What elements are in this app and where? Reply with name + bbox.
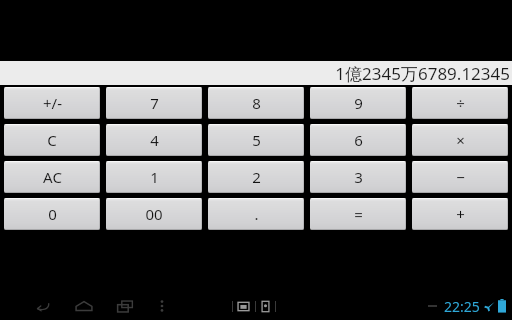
staticText: .: [254, 204, 259, 224]
button[interactable]: Recent apps: [112, 293, 138, 319]
staticText: 3: [354, 167, 363, 187]
staticText: 22:25: [444, 297, 480, 316]
staticText: +: [456, 204, 465, 224]
button[interactable]: Home: [71, 293, 97, 319]
button[interactable]: AC: [4, 161, 100, 193]
staticText: 5: [252, 130, 261, 150]
button[interactable]: 3: [310, 161, 406, 193]
button[interactable]: 4: [106, 124, 202, 156]
button[interactable]: =: [310, 198, 406, 230]
staticText: C: [47, 130, 57, 150]
staticText: =: [354, 204, 363, 224]
staticText: 0: [48, 204, 57, 224]
button[interactable]: C: [4, 124, 100, 156]
staticText: +/-: [43, 93, 62, 113]
button[interactable]: +: [412, 198, 508, 230]
staticText: −: [456, 167, 465, 187]
button[interactable]: 0: [4, 198, 100, 230]
button[interactable]: Back: [30, 293, 56, 319]
staticText: ×: [456, 130, 465, 150]
staticText: 6: [354, 130, 363, 150]
staticText: 2: [252, 167, 261, 187]
staticText: 7: [150, 93, 159, 113]
staticText: 1: [150, 167, 159, 187]
staticText: 8: [252, 93, 261, 113]
button[interactable]: More options: [152, 296, 172, 316]
button[interactable]: USB connected: [261, 300, 270, 313]
button[interactable]: 7: [106, 87, 202, 119]
button[interactable]: −: [412, 161, 508, 193]
button[interactable]: +/-: [4, 87, 100, 119]
button[interactable]: 8: [208, 87, 304, 119]
staticText: 4: [150, 130, 159, 150]
staticText: ÷: [456, 93, 465, 113]
button[interactable]: Screenshot: [237, 300, 250, 313]
button[interactable]: ÷: [412, 87, 508, 119]
button[interactable]: 9: [310, 87, 406, 119]
staticText: 1億2345万6789.12345: [335, 62, 510, 85]
button[interactable]: 6: [310, 124, 406, 156]
button[interactable]: 2: [208, 161, 304, 193]
staticText: AC: [43, 167, 62, 187]
button[interactable]: 1: [106, 161, 202, 193]
button[interactable]: .: [208, 198, 304, 230]
staticText: 9: [354, 93, 363, 113]
button[interactable]: 5: [208, 124, 304, 156]
button[interactable]: ×: [412, 124, 508, 156]
staticText: 00: [145, 204, 163, 224]
button[interactable]: 00: [106, 198, 202, 230]
